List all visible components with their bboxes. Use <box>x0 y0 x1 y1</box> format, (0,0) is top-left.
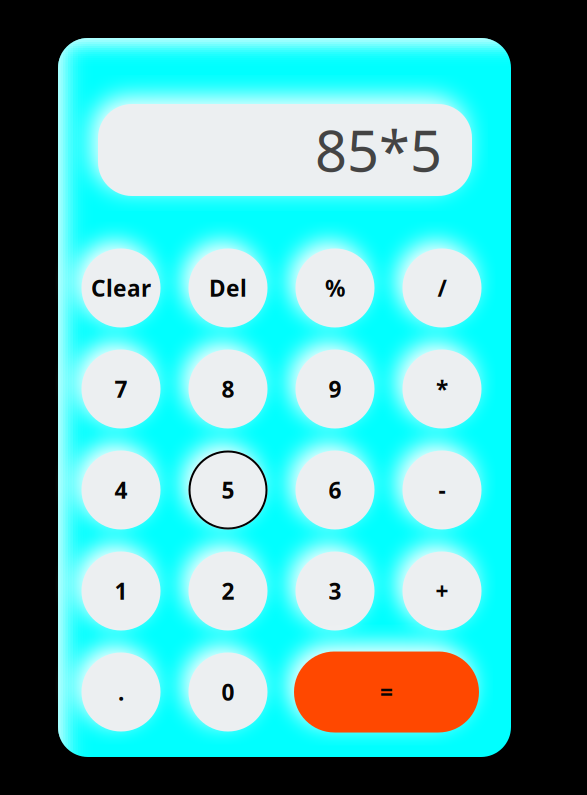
button[interactable]: 9 <box>295 349 374 428</box>
staticText: + <box>435 576 448 606</box>
staticText: 9 <box>328 374 341 404</box>
staticText: - <box>438 475 445 505</box>
button[interactable]: Del <box>188 248 267 327</box>
button[interactable]: = <box>294 651 479 732</box>
staticText: Clear <box>91 273 151 303</box>
button[interactable]: 2 <box>188 551 267 630</box>
button[interactable]: 3 <box>295 551 374 630</box>
staticText: * <box>436 374 448 404</box>
staticText: 6 <box>328 475 341 505</box>
staticText: 1 <box>114 576 127 606</box>
button[interactable]: / <box>402 248 481 327</box>
staticText: 8 <box>221 374 234 404</box>
button[interactable]: Clear <box>81 248 160 327</box>
button[interactable]: 6 <box>295 450 374 529</box>
button[interactable]: * <box>402 349 481 428</box>
button[interactable]: 5 <box>188 450 267 529</box>
staticText: Del <box>209 273 247 303</box>
staticText: 7 <box>114 374 127 404</box>
staticText: = <box>380 677 393 707</box>
staticText: 3 <box>328 576 341 606</box>
staticText: 4 <box>114 475 127 505</box>
staticText: 0 <box>221 677 234 707</box>
button[interactable]: - <box>402 450 481 529</box>
button[interactable]: % <box>295 248 374 327</box>
button[interactable]: 1 <box>81 551 160 630</box>
staticText: 85*5 <box>315 113 442 187</box>
button[interactable]: 7 <box>81 349 160 428</box>
button[interactable]: + <box>402 551 481 630</box>
button[interactable]: 8 <box>188 349 267 428</box>
button[interactable]: . <box>81 652 160 731</box>
button[interactable]: 0 <box>188 652 267 731</box>
staticText: % <box>325 273 345 303</box>
staticText: 2 <box>221 576 234 606</box>
staticText: / <box>437 273 446 303</box>
button[interactable]: 4 <box>81 450 160 529</box>
staticText: 5 <box>221 475 234 505</box>
staticText: . <box>118 677 124 707</box>
